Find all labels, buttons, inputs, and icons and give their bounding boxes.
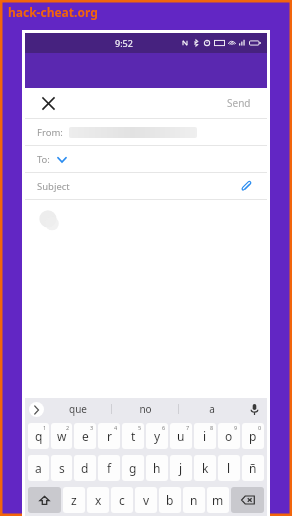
button[interactable]: ñ (242, 455, 264, 481)
button[interactable]: a (28, 455, 49, 481)
staticText: y (154, 428, 161, 444)
staticText: q (35, 428, 43, 444)
staticText: 6 (162, 424, 166, 431)
button[interactable]: i (194, 423, 216, 449)
button[interactable]: p (242, 423, 264, 449)
button[interactable]: Backspace (231, 487, 264, 513)
staticText: 1 (43, 424, 47, 431)
staticText: 7 (186, 424, 190, 431)
button[interactable]: t (122, 423, 144, 449)
staticText: From: (37, 126, 63, 139)
staticText: b (166, 492, 174, 508)
staticText: no (139, 402, 152, 416)
staticText: 9:52 (115, 37, 133, 49)
button[interactable]: To: (25, 146, 267, 172)
button[interactable]: More suggestions (29, 402, 44, 417)
staticText: w (57, 428, 67, 444)
button[interactable]: r (98, 423, 120, 449)
staticText: m (212, 492, 224, 508)
button[interactable]: z (63, 487, 85, 513)
staticText: ñ (249, 460, 257, 476)
button[interactable]: Expand recipients (55, 152, 69, 166)
staticText: o (225, 428, 233, 444)
staticText: n (190, 492, 198, 508)
button[interactable]: y (146, 423, 168, 449)
staticText: g (129, 460, 137, 476)
staticText: a (209, 402, 215, 416)
button[interactable]: o (218, 423, 240, 449)
staticText: x (95, 492, 102, 508)
button[interactable]: l (218, 455, 240, 481)
button[interactable]: Shift (28, 487, 61, 513)
button[interactable]: Close (37, 92, 59, 114)
button[interactable]: q (28, 423, 49, 449)
staticText: t (131, 428, 136, 444)
staticText: hack-cheat.org (8, 4, 98, 20)
staticText: a (35, 460, 42, 476)
button[interactable]: v (135, 487, 157, 513)
staticText: p (249, 428, 257, 444)
button[interactable]: Attach file (237, 177, 255, 195)
button[interactable]: d (74, 455, 96, 481)
button[interactable]: a (179, 398, 245, 420)
button[interactable]: s (51, 455, 72, 481)
button[interactable]: w (51, 423, 72, 449)
button[interactable]: x (87, 487, 109, 513)
staticText: h (153, 460, 161, 476)
staticText: c (119, 492, 125, 508)
staticText: j (179, 460, 183, 476)
staticText: s (59, 460, 65, 476)
button[interactable]: Voice input (245, 400, 263, 418)
staticText: i (203, 428, 207, 444)
button[interactable]: Send (223, 92, 255, 114)
button[interactable]: no (112, 398, 178, 420)
button[interactable]: f (98, 455, 120, 481)
button[interactable]: From: (25, 119, 267, 145)
staticText: 5 (138, 424, 142, 431)
button[interactable]: n (183, 487, 205, 513)
button[interactable]: b (159, 487, 181, 513)
staticText: 3 (90, 424, 94, 431)
staticText: v (143, 492, 150, 508)
staticText: l (227, 460, 231, 476)
button[interactable]: e (74, 423, 96, 449)
button[interactable]: j (170, 455, 192, 481)
staticText: u (177, 428, 185, 444)
staticText: e (82, 428, 89, 444)
button[interactable]: m (207, 487, 229, 513)
staticText: r (107, 428, 112, 444)
staticText: 9 (234, 424, 238, 431)
staticText: 0 (258, 424, 262, 431)
button[interactable]: g (122, 455, 144, 481)
staticText: Send (227, 96, 251, 110)
staticText: Subject (37, 180, 70, 193)
staticText: z (71, 492, 77, 508)
staticText: k (202, 460, 209, 476)
staticText: To: (37, 153, 50, 166)
staticText: d (81, 460, 89, 476)
staticText: que (69, 402, 87, 416)
staticText: 4 (114, 424, 118, 431)
button[interactable]: u (170, 423, 192, 449)
button[interactable]: k (194, 455, 216, 481)
staticText: 8 (210, 424, 214, 431)
staticText: f (107, 460, 112, 476)
button[interactable]: h (146, 455, 168, 481)
button[interactable]: que (44, 398, 111, 420)
button[interactable]: c (111, 487, 133, 513)
staticText: 2 (66, 424, 70, 431)
